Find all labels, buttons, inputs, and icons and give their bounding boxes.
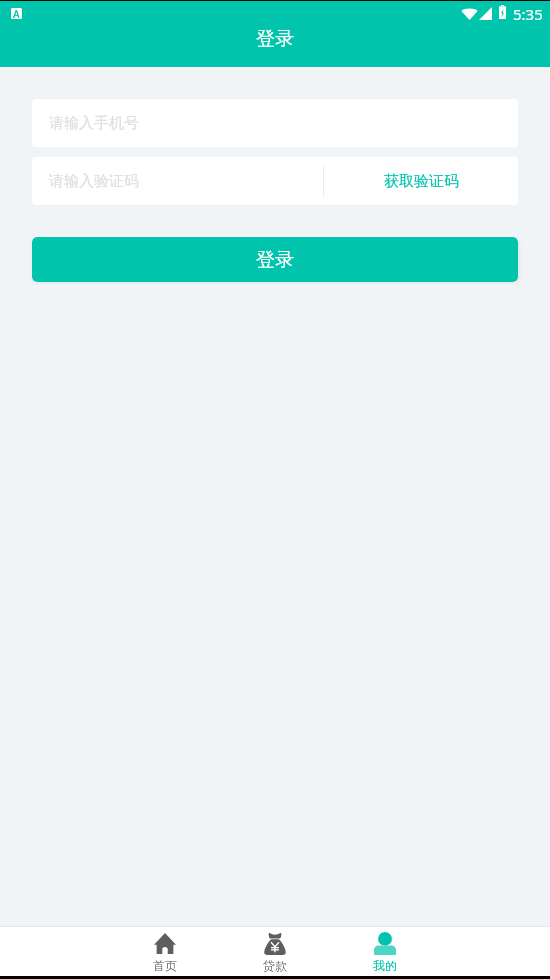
staticText: 获取验证码 <box>384 172 459 191</box>
button[interactable]: 首页 <box>110 926 220 976</box>
button[interactable]: 贷款 <box>220 926 330 976</box>
staticText: 我的 <box>373 958 397 973</box>
staticText: 请输入验证码 <box>49 172 139 191</box>
button[interactable]: 获取验证码 <box>324 157 518 205</box>
staticText: 首页 <box>153 958 177 973</box>
other: Notification <box>11 8 22 19</box>
staticText: 登录 <box>256 248 294 272</box>
button[interactable]: 登录 <box>32 237 518 282</box>
button[interactable]: 我的 <box>330 926 440 976</box>
staticText: 登录 <box>256 27 294 51</box>
staticText: 贷款 <box>263 958 287 973</box>
button[interactable]: 请输入手机号 <box>32 99 518 147</box>
staticText: A <box>13 8 20 18</box>
staticText: 5:35 <box>513 4 543 24</box>
button[interactable]: 请输入验证码 <box>32 157 324 205</box>
staticText: 请输入手机号 <box>49 114 139 133</box>
